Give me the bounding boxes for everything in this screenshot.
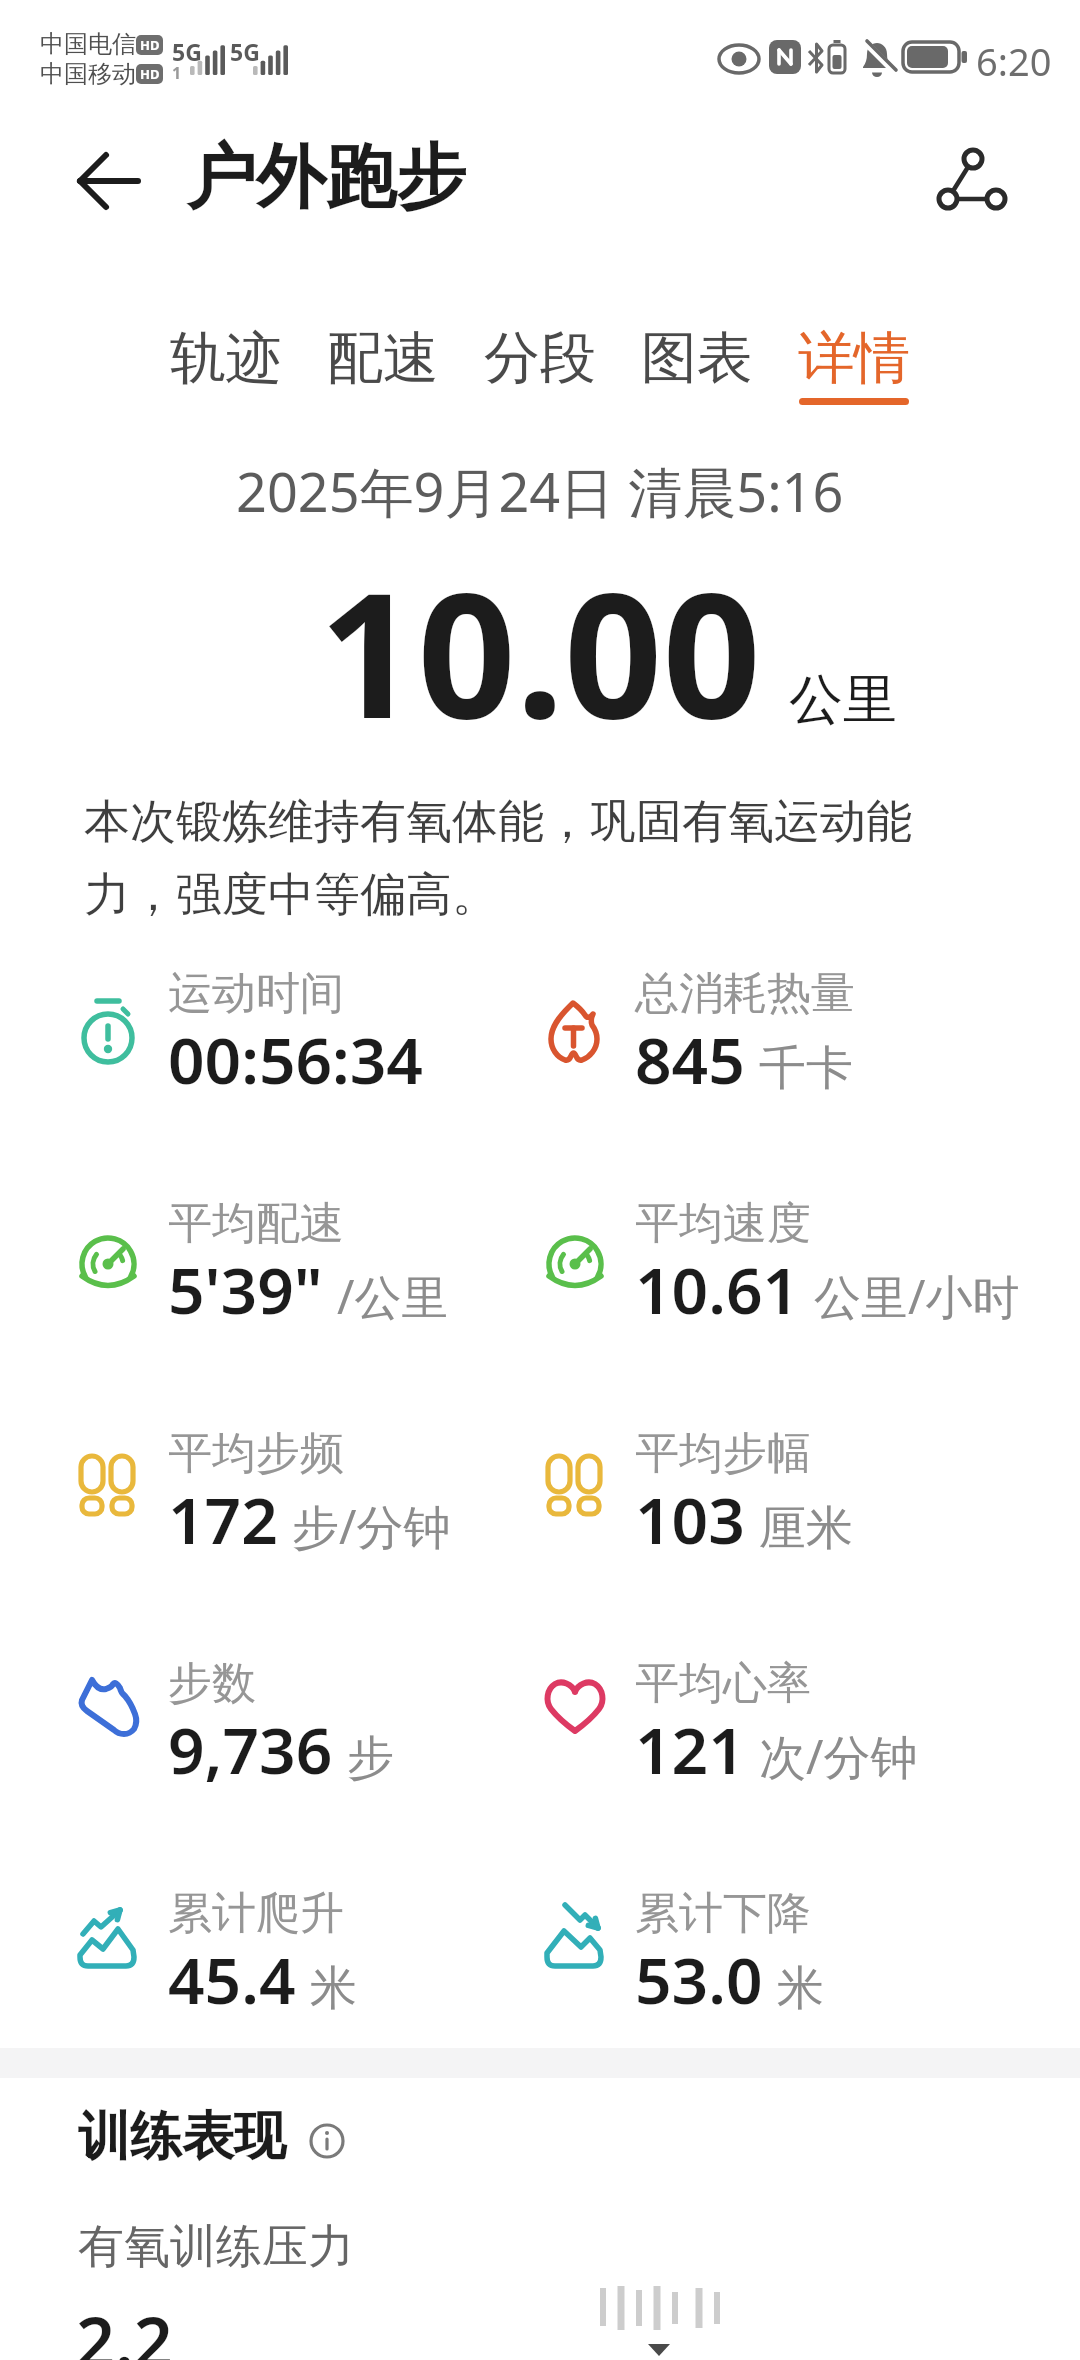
staticText: 10.00 (319, 534, 761, 768)
staticText: 平均步幅 (635, 1426, 811, 1481)
button[interactable]: 配速 (327, 323, 439, 405)
staticText: 平均心率 (635, 1656, 811, 1711)
staticText: 6:20 (976, 35, 1052, 87)
staticText: 5G (172, 36, 202, 67)
staticText: 训练表现 (78, 2104, 286, 2170)
staticText: 9,736 (168, 1706, 333, 1793)
button[interactable]: 分段 (484, 323, 596, 405)
staticText: HD (140, 36, 160, 54)
staticText: 总消耗热量 (635, 966, 855, 1021)
staticText: 轨迹 (170, 323, 282, 394)
staticText: 公里 (789, 666, 897, 734)
staticText: 步数 (168, 1656, 256, 1711)
staticText: 次/分钟 (759, 1724, 918, 1788)
staticText: 配速 (327, 323, 439, 394)
staticText: 2025年9月24日 清晨5:16 (236, 454, 844, 528)
staticText: 步/分钟 (292, 1494, 451, 1558)
button[interactable] (634, 2334, 684, 2360)
staticText: 平均步频 (168, 1426, 344, 1481)
staticText: 53.0 (635, 1936, 763, 2023)
staticText: 累计下降 (635, 1886, 811, 1941)
staticText: 米 (777, 1959, 824, 2018)
staticText: 1 (172, 62, 182, 84)
staticText: 00:56:34 (168, 1016, 423, 1103)
staticText: 平均速度 (635, 1196, 811, 1251)
staticText: 10.61 (635, 1246, 800, 1333)
staticText: 45.4 (168, 1936, 296, 2023)
staticText: 有氧训练压力 (78, 2218, 354, 2276)
staticText: 厘米 (759, 1499, 853, 1558)
staticText: 中国移动 (40, 59, 136, 89)
staticText: 累计爬升 (168, 1886, 344, 1941)
button[interactable]: 详情 (798, 323, 910, 405)
staticText: 本次锻炼维持有氧体能，巩固有氧运动能 力，强度中等偏高。 (84, 793, 912, 923)
staticText: 户外跑步 (186, 134, 466, 222)
staticText: 845 (635, 1016, 745, 1103)
staticText: 步 (347, 1729, 394, 1788)
staticText: /公里 (337, 1264, 449, 1328)
staticText: 米 (310, 1959, 357, 2018)
button[interactable] (928, 136, 1012, 220)
staticText: 172 (168, 1476, 278, 1563)
staticText: 千卡 (759, 1039, 853, 1098)
staticText: 平均配速 (168, 1196, 344, 1251)
staticText: 121 (635, 1706, 745, 1793)
staticText: 公里/小时 (814, 1264, 1020, 1328)
staticText: 中国电信 (40, 29, 136, 59)
staticText: 图表 (641, 323, 753, 394)
staticText: 详情 (798, 323, 910, 394)
staticText: 5'39" (168, 1246, 323, 1333)
staticText: 分段 (484, 323, 596, 394)
staticText: 103 (635, 1476, 745, 1563)
staticText: 运动时间 (168, 966, 344, 1021)
button[interactable] (308, 2122, 348, 2162)
button[interactable]: 轨迹 (170, 323, 282, 405)
staticText: HD (140, 65, 160, 83)
button[interactable] (66, 140, 150, 224)
staticText: 5G (230, 36, 260, 67)
staticText: 2.2 (76, 2294, 173, 2360)
button[interactable]: 图表 (641, 323, 753, 405)
